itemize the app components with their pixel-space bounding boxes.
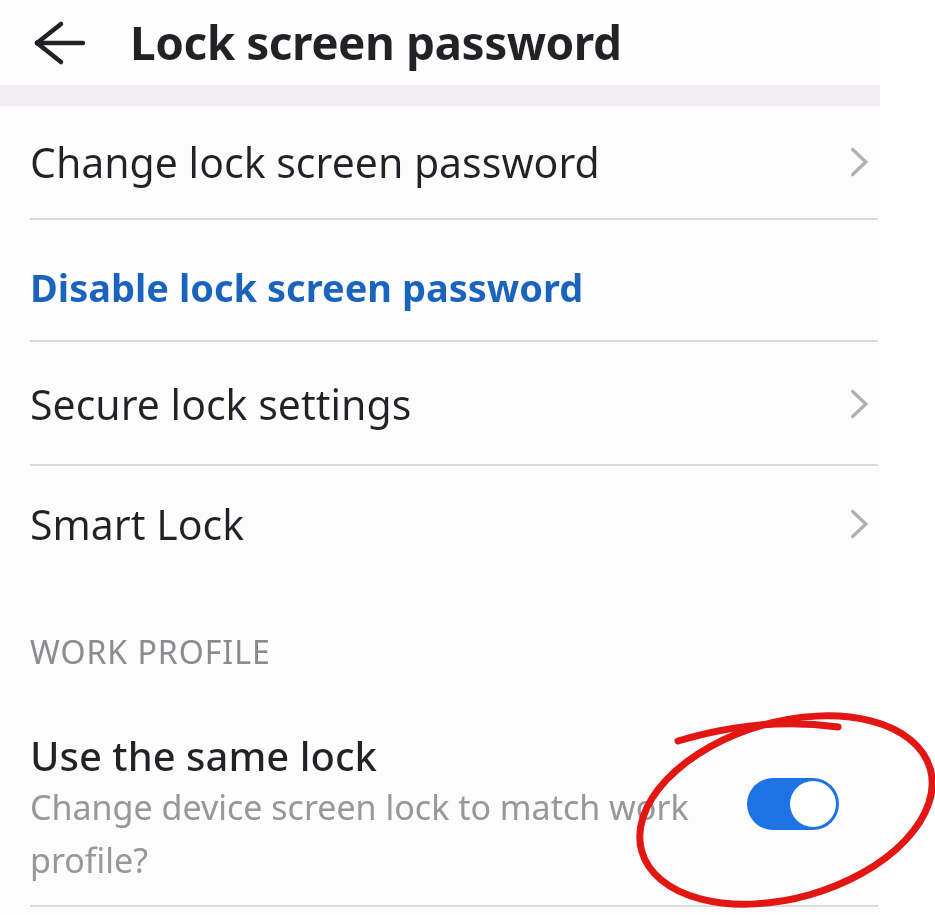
button[interactable]: Secure lock settings — [0, 342, 880, 466]
staticText: Disable lock screen password — [30, 261, 584, 313]
staticText: WORK PROFILE — [30, 630, 271, 674]
button[interactable]: Use the same lock — [0, 712, 880, 892]
button[interactable]: Change lock screen password — [0, 106, 880, 218]
button[interactable]: Disable lock screen password — [0, 220, 880, 354]
staticText: Change device screen lock to match work … — [30, 784, 689, 883]
staticText: Smart Lock — [30, 496, 245, 552]
button[interactable] — [747, 778, 839, 830]
button[interactable]: Smart Lock — [0, 466, 880, 582]
staticText: Secure lock settings — [30, 376, 412, 432]
staticText: Change lock screen password — [30, 134, 600, 190]
staticText: Use the same lock — [30, 728, 377, 782]
button[interactable] — [0, 0, 110, 85]
staticText: Lock screen password — [130, 11, 622, 74]
